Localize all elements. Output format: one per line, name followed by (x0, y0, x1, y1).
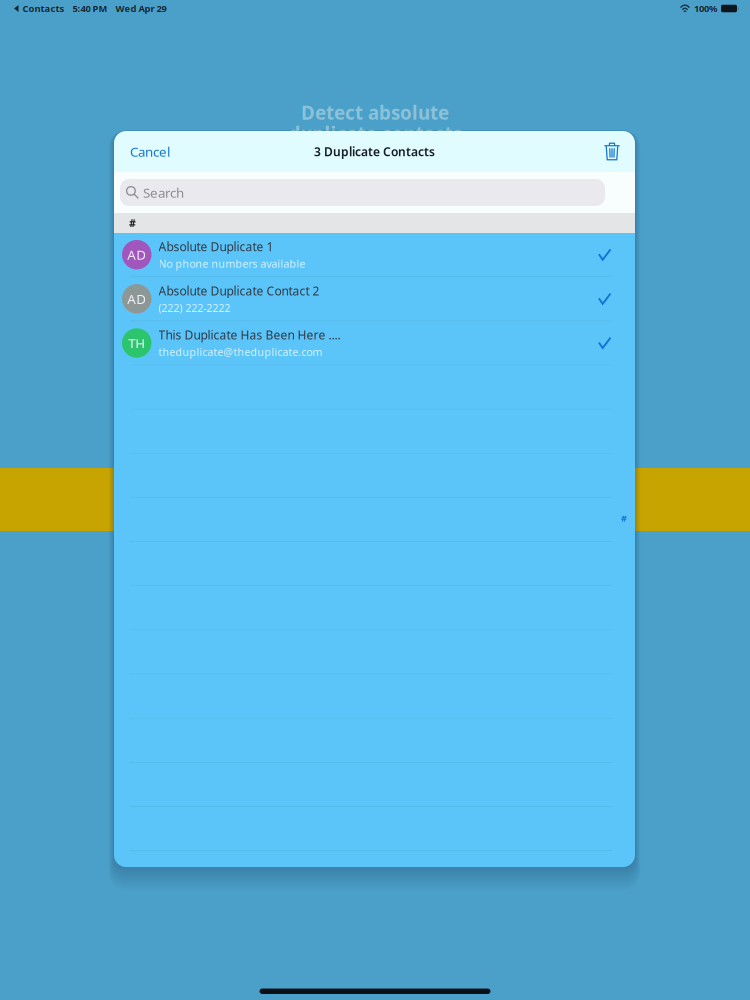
staticText: duplicate contacts (288, 121, 461, 146)
staticText: Wed Apr 29 (115, 2, 166, 15)
staticText: This Duplicate Has Been Here .... (158, 327, 340, 343)
staticText: Absolute Duplicate 1 (158, 239, 273, 254)
staticText: (222) 222-2222 (158, 301, 230, 315)
button[interactable]: TH (114, 321, 635, 365)
staticText: 3 Duplicate Contacts (314, 143, 435, 159)
staticText: # (129, 216, 136, 230)
staticText: AD (127, 290, 146, 308)
staticText: Search (143, 184, 184, 201)
staticText: Absolute Duplicate Contact 2 (158, 283, 319, 299)
button[interactable]: Cancel (130, 143, 170, 160)
button[interactable]: AD (114, 233, 635, 276)
staticText: AD (127, 246, 146, 263)
staticText: theduplicate@theduplicate.com (158, 345, 322, 359)
staticText: Detect absolute (301, 100, 449, 125)
staticText: No phone numbers available (158, 257, 305, 271)
staticText: 5:40 PM (72, 2, 107, 15)
staticText: # (621, 512, 627, 524)
staticText: Contacts (22, 2, 64, 15)
staticText: 100% (694, 2, 717, 15)
button[interactable]: AD (114, 277, 635, 320)
staticText: TH (128, 334, 145, 352)
staticText: Cancel (130, 143, 170, 160)
button[interactable]: Delete duplicates (604, 142, 620, 160)
